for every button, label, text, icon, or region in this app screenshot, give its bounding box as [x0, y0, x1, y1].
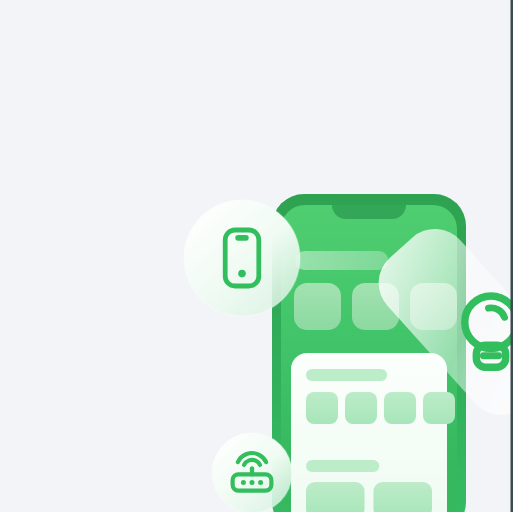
button[interactable]: Smart home app illustration: [0, 0, 513, 512]
